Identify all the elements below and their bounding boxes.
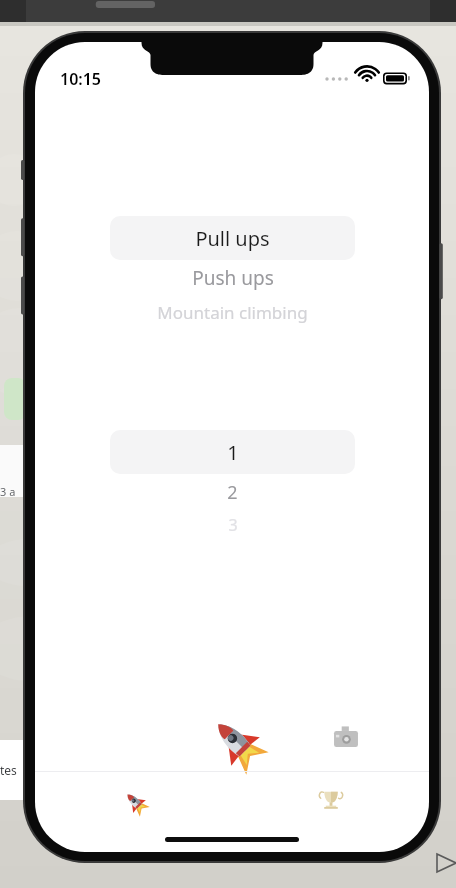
button[interactable]: Push ups xyxy=(110,260,355,296)
button[interactable]: 1 xyxy=(110,430,355,474)
button[interactable]: Workouts xyxy=(35,772,232,830)
staticText: tes xyxy=(0,762,17,778)
button[interactable]: Camera xyxy=(333,726,359,752)
staticText: 1 xyxy=(227,439,239,466)
staticText: 10:15 xyxy=(60,68,102,90)
button[interactable]: Achievements xyxy=(232,772,429,830)
staticText: Push ups xyxy=(192,265,274,291)
button[interactable]: Start workout xyxy=(203,709,263,769)
button[interactable]: Mountain climbing xyxy=(110,296,355,328)
staticText: 3 xyxy=(228,514,238,536)
staticText: 3 a xyxy=(0,484,16,499)
button[interactable]: Pull ups xyxy=(110,216,355,260)
staticText: Pull ups xyxy=(195,225,270,252)
staticText: 2 xyxy=(227,480,238,505)
button[interactable]: 2 xyxy=(110,474,355,510)
staticText: Mountain climbing xyxy=(157,301,308,324)
